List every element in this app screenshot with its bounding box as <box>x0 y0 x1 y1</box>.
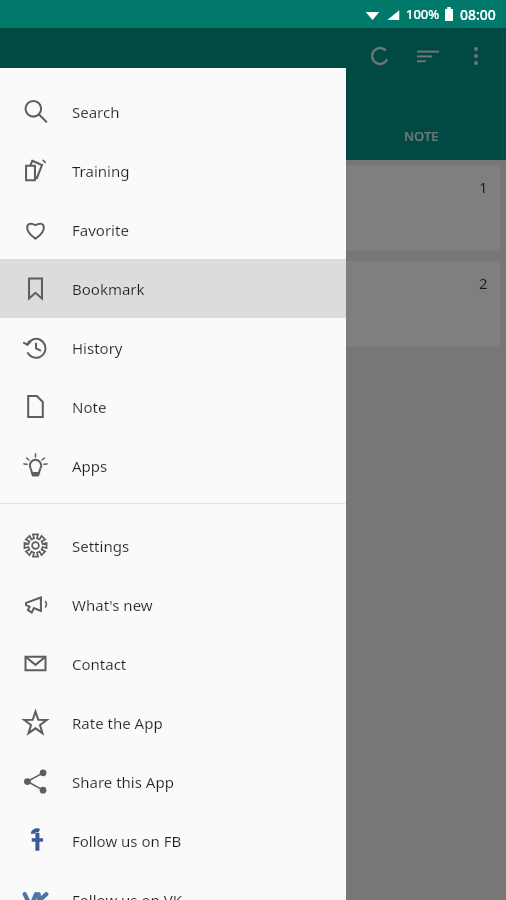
button[interactable]: Training <box>0 141 346 200</box>
button[interactable]: Rate the App <box>0 693 346 752</box>
button[interactable]: NOTE <box>337 112 506 160</box>
staticText: Follow us on FB <box>72 831 182 851</box>
staticText: Apps <box>72 456 108 476</box>
staticText: Follow us on VK <box>72 890 182 900</box>
staticText: NOTE <box>404 127 439 145</box>
staticText: Share this App <box>72 772 174 792</box>
staticText: 2 <box>479 273 488 293</box>
staticText: 100% <box>406 5 440 23</box>
button[interactable]: Sort <box>404 32 452 80</box>
button[interactable]: Note <box>0 377 346 436</box>
button[interactable]: Apps <box>0 436 346 495</box>
button[interactable]: 2 <box>6 261 500 347</box>
staticText: Bookmark <box>72 279 145 299</box>
button[interactable]: Search <box>0 82 346 141</box>
button[interactable]: Follow us on VK <box>0 870 346 900</box>
staticText: Note <box>72 397 107 417</box>
button[interactable]: Contact <box>0 634 346 693</box>
staticText: History <box>72 338 123 358</box>
button[interactable]: Favorite <box>0 200 346 259</box>
staticText: What's new <box>72 595 153 615</box>
button[interactable]: History <box>0 318 346 377</box>
button[interactable]: Shuffle <box>356 32 404 80</box>
button[interactable]: 1 <box>6 165 500 251</box>
button[interactable]: Share this App <box>0 752 346 811</box>
staticText: Favorite <box>72 220 129 240</box>
button[interactable]: Settings <box>0 516 346 575</box>
staticText: Contact <box>72 654 127 674</box>
button[interactable]: Bookmark <box>0 259 346 318</box>
staticText: 1 <box>479 177 488 197</box>
staticText: Rate the App <box>72 713 163 733</box>
staticText: Search <box>72 102 120 122</box>
staticText: Training <box>72 161 130 181</box>
button[interactable]: What's new <box>0 575 346 634</box>
button[interactable]: Follow us on FB <box>0 811 346 870</box>
staticText: 08:00 <box>460 5 496 24</box>
staticText: Settings <box>72 536 130 556</box>
button[interactable]: More options <box>452 32 500 80</box>
button[interactable]: CARDS <box>0 112 168 160</box>
